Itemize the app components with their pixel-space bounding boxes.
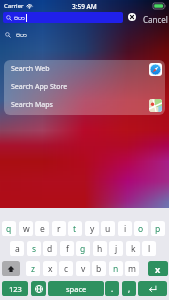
staticText: c [64,263,69,275]
button[interactable]: Delete [148,261,168,276]
staticText: ဗဟ [16,30,27,40]
button[interactable]: y [85,221,99,236]
button[interactable]: 123 [2,281,28,296]
staticText: f [66,243,69,255]
staticText: r [57,223,61,235]
button[interactable]: Clear search [128,13,136,21]
button[interactable]: Search Maps [4,96,165,114]
staticText: Search Web [11,64,50,74]
button[interactable]: i [118,221,132,236]
button[interactable]: j [109,241,123,256]
button[interactable]: o [134,221,148,236]
button[interactable]: k [126,241,140,256]
staticText: x [155,263,161,275]
button[interactable]: q [2,221,16,236]
staticText: x [48,263,53,275]
button[interactable]: . [105,281,119,296]
button[interactable]: t [68,221,82,236]
button[interactable]: space [48,281,104,296]
button[interactable]: s [27,241,41,256]
button[interactable]: Search Web [4,60,165,78]
staticText: z [31,263,35,275]
staticText: o [138,223,144,235]
staticText: d [47,243,53,255]
staticText: 123 [9,284,22,294]
staticText: ဗဟ [14,13,25,23]
button[interactable]: a [10,241,24,256]
staticText: u [105,223,111,235]
button[interactable]: b [92,261,106,276]
button[interactable]: x [43,261,57,276]
button[interactable]: l [142,241,156,256]
button[interactable]: g [76,241,90,256]
staticText: 3:59 AM [72,2,97,11]
button[interactable]: Search App Store [4,78,165,96]
staticText: l [148,243,151,255]
staticText: g [80,243,86,255]
button[interactable]: n [109,261,123,276]
button[interactable]: Return [138,281,167,296]
staticText: e [40,223,45,235]
staticText: k [131,243,136,255]
button[interactable]: d [43,241,57,256]
button[interactable]: p [151,221,165,236]
staticText: h [97,243,103,255]
staticText: space [66,284,87,294]
staticText: . [111,283,114,294]
staticText: y [90,223,95,235]
staticText: n [113,263,119,275]
button[interactable]: Switch keyboard [31,281,46,296]
staticText: , [128,283,131,294]
staticText: v [81,263,86,275]
button[interactable]: Shift [2,261,20,276]
button[interactable]: u [101,221,115,236]
button[interactable]: ဗဟ [0,29,169,41]
button[interactable]: e [35,221,49,236]
button[interactable]: f [60,241,74,256]
staticText: q [6,223,12,235]
staticText: i [124,223,127,235]
button[interactable]: c [59,261,73,276]
staticText: t [73,223,77,235]
staticText: w [23,223,30,235]
staticText: j [115,243,118,255]
button[interactable]: z [26,261,40,276]
button[interactable]: ဗဟ [3,12,123,23]
staticText: p [155,223,161,235]
staticText: Search App Store [11,82,68,92]
staticText: m [128,263,136,275]
button[interactable]: w [19,221,33,236]
button[interactable]: v [76,261,90,276]
staticText: Cancel [143,14,168,25]
staticText: Carrier [4,2,24,10]
staticText: s [32,243,37,255]
staticText: Search Maps [11,100,53,110]
button[interactable]: r [52,221,66,236]
staticText: b [96,263,102,275]
button[interactable]: h [93,241,107,256]
button[interactable]: m [125,261,139,276]
staticText: a [15,243,20,255]
button[interactable]: , [122,281,136,296]
button[interactable]: Cancel [141,12,169,27]
